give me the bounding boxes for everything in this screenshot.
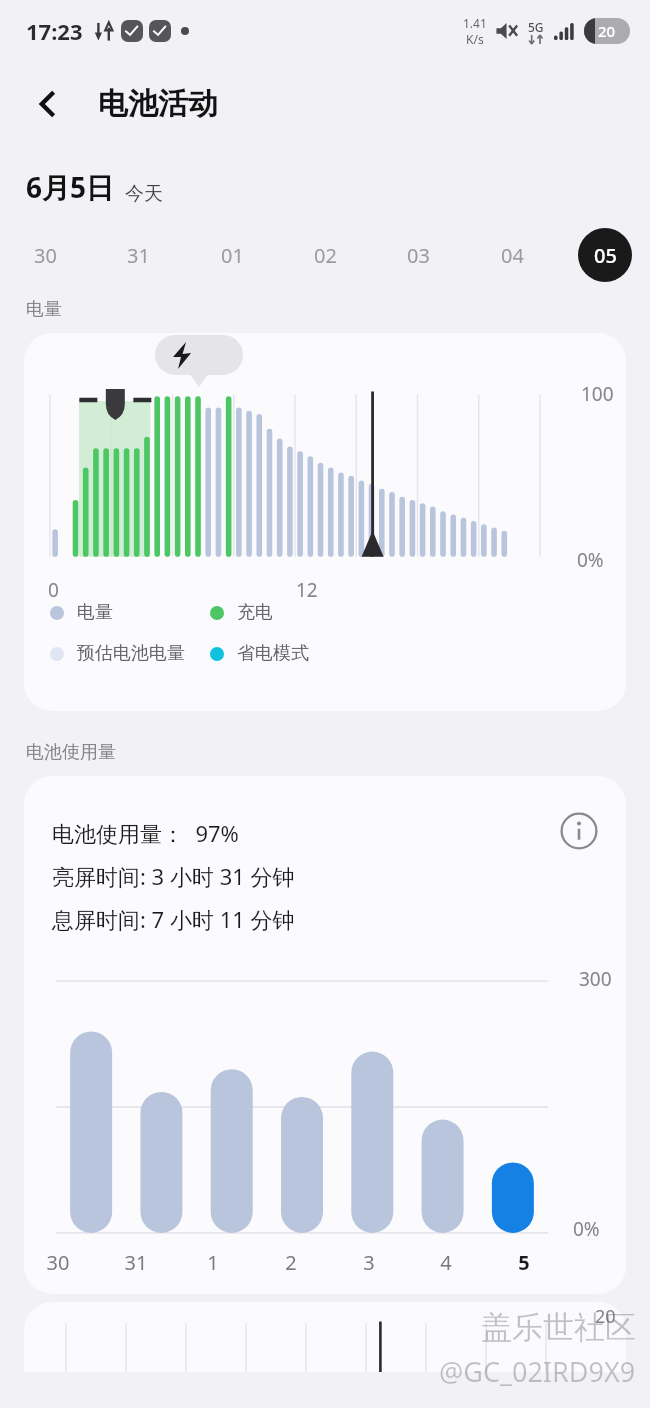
staticText: 3 xyxy=(345,1249,393,1276)
staticText: 30 xyxy=(34,242,57,269)
staticText: 充电 xyxy=(237,601,273,624)
staticText: 100 xyxy=(581,381,614,407)
staticText: 31 xyxy=(127,242,150,269)
staticText: 5G xyxy=(528,19,544,35)
button[interactable]: 预估电池电量 xyxy=(50,642,210,665)
staticText: 5 xyxy=(500,1249,548,1276)
staticText: 盖乐世社区 xyxy=(481,1308,636,1347)
staticText: 预估电池电量 xyxy=(77,642,185,665)
button[interactable]: Info xyxy=(556,808,602,854)
staticText: 0% xyxy=(573,1216,600,1242)
staticText: 电量 xyxy=(26,298,62,321)
staticText: 0% xyxy=(577,547,604,573)
staticText: K/s xyxy=(466,31,484,47)
staticText: 今天 xyxy=(125,182,163,206)
button[interactable]: 电量 xyxy=(50,601,210,624)
staticText: 电池使用量： 97% xyxy=(52,818,239,848)
button[interactable]: 01 xyxy=(205,228,259,282)
staticText: 02 xyxy=(314,242,337,269)
staticText: 电量 xyxy=(77,601,113,624)
staticText: 电池活动 xyxy=(98,85,218,123)
staticText: 6月5日 xyxy=(26,168,115,206)
staticText: 2 xyxy=(267,1249,315,1276)
button[interactable]: 05 xyxy=(578,228,632,282)
staticText: 17:23 xyxy=(26,16,83,46)
button[interactable]: 04 xyxy=(485,228,539,282)
staticText: 亮屏时间: 3 小时 31 分钟 xyxy=(52,861,295,891)
staticText: 1 xyxy=(189,1249,237,1276)
staticText: 03 xyxy=(407,242,430,269)
button[interactable]: Back xyxy=(20,76,76,132)
staticText: 04 xyxy=(501,242,524,269)
button[interactable]: 03 xyxy=(391,228,445,282)
staticText: 4 xyxy=(422,1249,470,1276)
staticText: 1.41 xyxy=(463,15,487,31)
staticText: 20 xyxy=(595,1304,616,1329)
button[interactable]: 31 xyxy=(111,228,165,282)
staticText: 300 xyxy=(579,966,612,992)
button[interactable]: 02 xyxy=(298,228,352,282)
staticText: 01 xyxy=(221,242,244,269)
staticText: 31 xyxy=(112,1249,160,1276)
staticText: 省电模式 xyxy=(237,642,309,665)
staticText: 30 xyxy=(34,1249,82,1276)
button[interactable]: 100 xyxy=(24,333,626,711)
button[interactable]: 30 xyxy=(18,228,72,282)
staticText: 0 xyxy=(48,577,59,603)
button[interactable]: 电池使用量： 97% xyxy=(24,776,626,1294)
staticText: 息屏时间: 7 小时 11 分钟 xyxy=(52,904,295,934)
staticText: 电池使用量 xyxy=(26,741,116,764)
staticText: 20 xyxy=(598,21,616,41)
staticText: @GC_02IRD9X9 xyxy=(439,1353,636,1390)
staticText: 05 xyxy=(594,242,617,269)
button[interactable]: 充电 xyxy=(210,601,273,624)
button[interactable]: 省电模式 xyxy=(210,642,309,665)
staticText: 12 xyxy=(296,577,318,603)
